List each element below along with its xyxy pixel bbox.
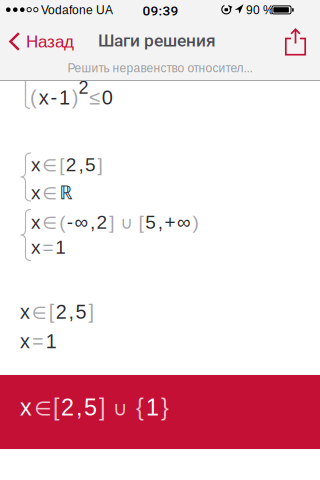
staticText: x∈[2,5] ∪ {1} bbox=[20, 394, 177, 421]
staticText: 2 bbox=[78, 77, 88, 98]
button[interactable]: Решить неравенство относител... bbox=[0, 61, 320, 75]
staticText: 90 % bbox=[246, 3, 274, 17]
staticText: (x-1) bbox=[30, 86, 86, 109]
staticText: 09:39 bbox=[142, 3, 178, 19]
staticText: Решить неравенство относител... bbox=[67, 61, 252, 75]
staticText: x=1 bbox=[20, 330, 64, 352]
staticText: Vodafone UA bbox=[41, 3, 113, 17]
staticText: ≤0 bbox=[89, 86, 120, 109]
staticText: Шаги решения bbox=[98, 30, 216, 51]
staticText: x∈[2,5] bbox=[31, 154, 109, 175]
staticText: x∈(-∞,2] ∪ [5,+∞) bbox=[31, 211, 205, 233]
staticText: Назад bbox=[26, 32, 74, 51]
staticText: x∈ℝ bbox=[31, 179, 80, 205]
staticText: x∈[2,5] bbox=[20, 301, 100, 323]
staticText: x=1 bbox=[31, 236, 73, 258]
button[interactable]: Поделиться bbox=[279, 26, 312, 58]
button[interactable]: Назад bbox=[9, 32, 74, 51]
